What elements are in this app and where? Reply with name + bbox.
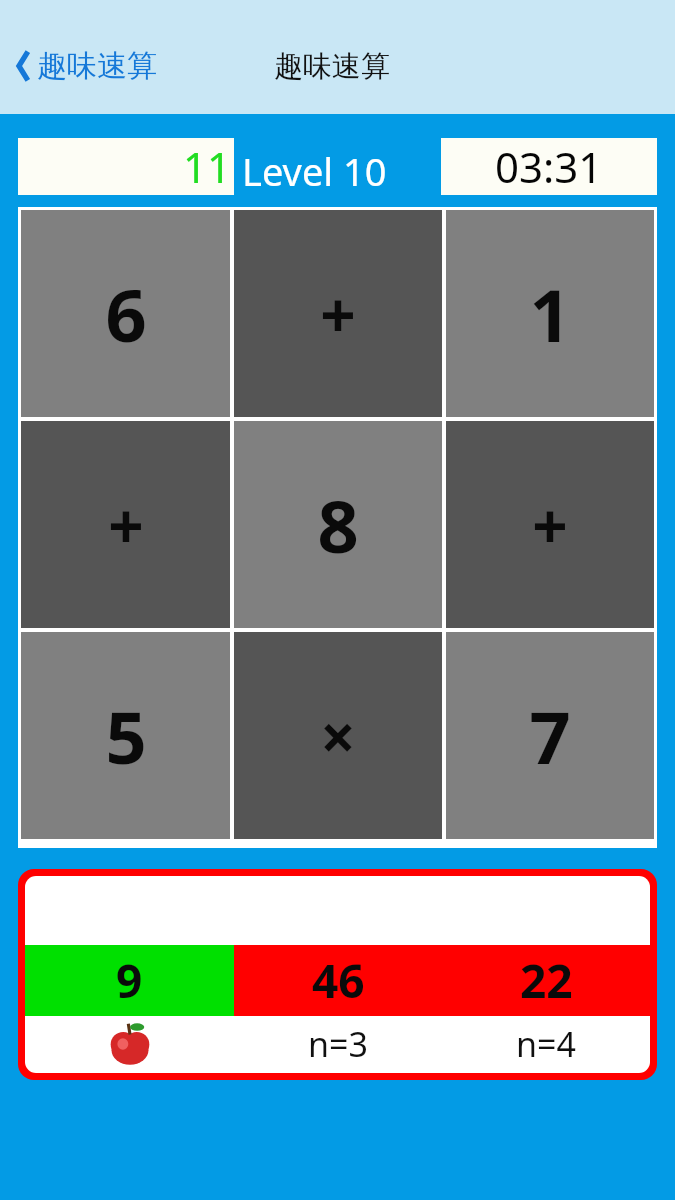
button[interactable]: 11 — [18, 138, 234, 195]
staticText: 22 — [520, 949, 573, 1012]
staticText: 46 — [312, 949, 365, 1012]
button[interactable] — [25, 876, 650, 945]
button[interactable]: + — [446, 421, 654, 628]
staticText: 8 — [317, 476, 359, 574]
button[interactable]: 5 — [21, 632, 230, 839]
staticText: + — [532, 483, 568, 567]
staticText: n=4 — [516, 1021, 576, 1067]
staticText: 趣味速算 — [274, 48, 390, 85]
staticText: 9 — [116, 949, 143, 1012]
staticText: 7 — [529, 687, 571, 785]
button[interactable]: 22 — [442, 945, 650, 1016]
button[interactable]: 8 — [234, 421, 442, 628]
button[interactable]: 46 — [234, 945, 442, 1016]
button[interactable]: 6 — [21, 210, 230, 417]
button[interactable]: + — [21, 421, 230, 628]
staticText: 11 — [183, 138, 232, 195]
staticText: + — [320, 272, 356, 356]
staticText: × — [320, 694, 356, 778]
staticText: 6 — [105, 265, 147, 363]
button[interactable]: 7 — [446, 632, 654, 839]
button[interactable]: n=3 — [234, 1016, 442, 1073]
staticText: 趣味速算 — [37, 47, 157, 85]
staticText: + — [108, 483, 144, 567]
staticText: 03:31 — [495, 138, 603, 195]
button[interactable]: × — [234, 632, 442, 839]
button[interactable]: 1 — [446, 210, 654, 417]
button[interactable]: n=4 — [442, 1016, 650, 1073]
staticText: Level 10 — [242, 145, 387, 197]
staticText: 1 — [529, 265, 571, 363]
staticText: 5 — [105, 687, 147, 785]
button[interactable]: 9 — [25, 945, 234, 1016]
button[interactable]: 趣味速算 — [0, 43, 165, 89]
button[interactable]: 03:31 — [441, 138, 657, 195]
staticText: n=3 — [308, 1021, 368, 1067]
button[interactable]: + — [234, 210, 442, 417]
